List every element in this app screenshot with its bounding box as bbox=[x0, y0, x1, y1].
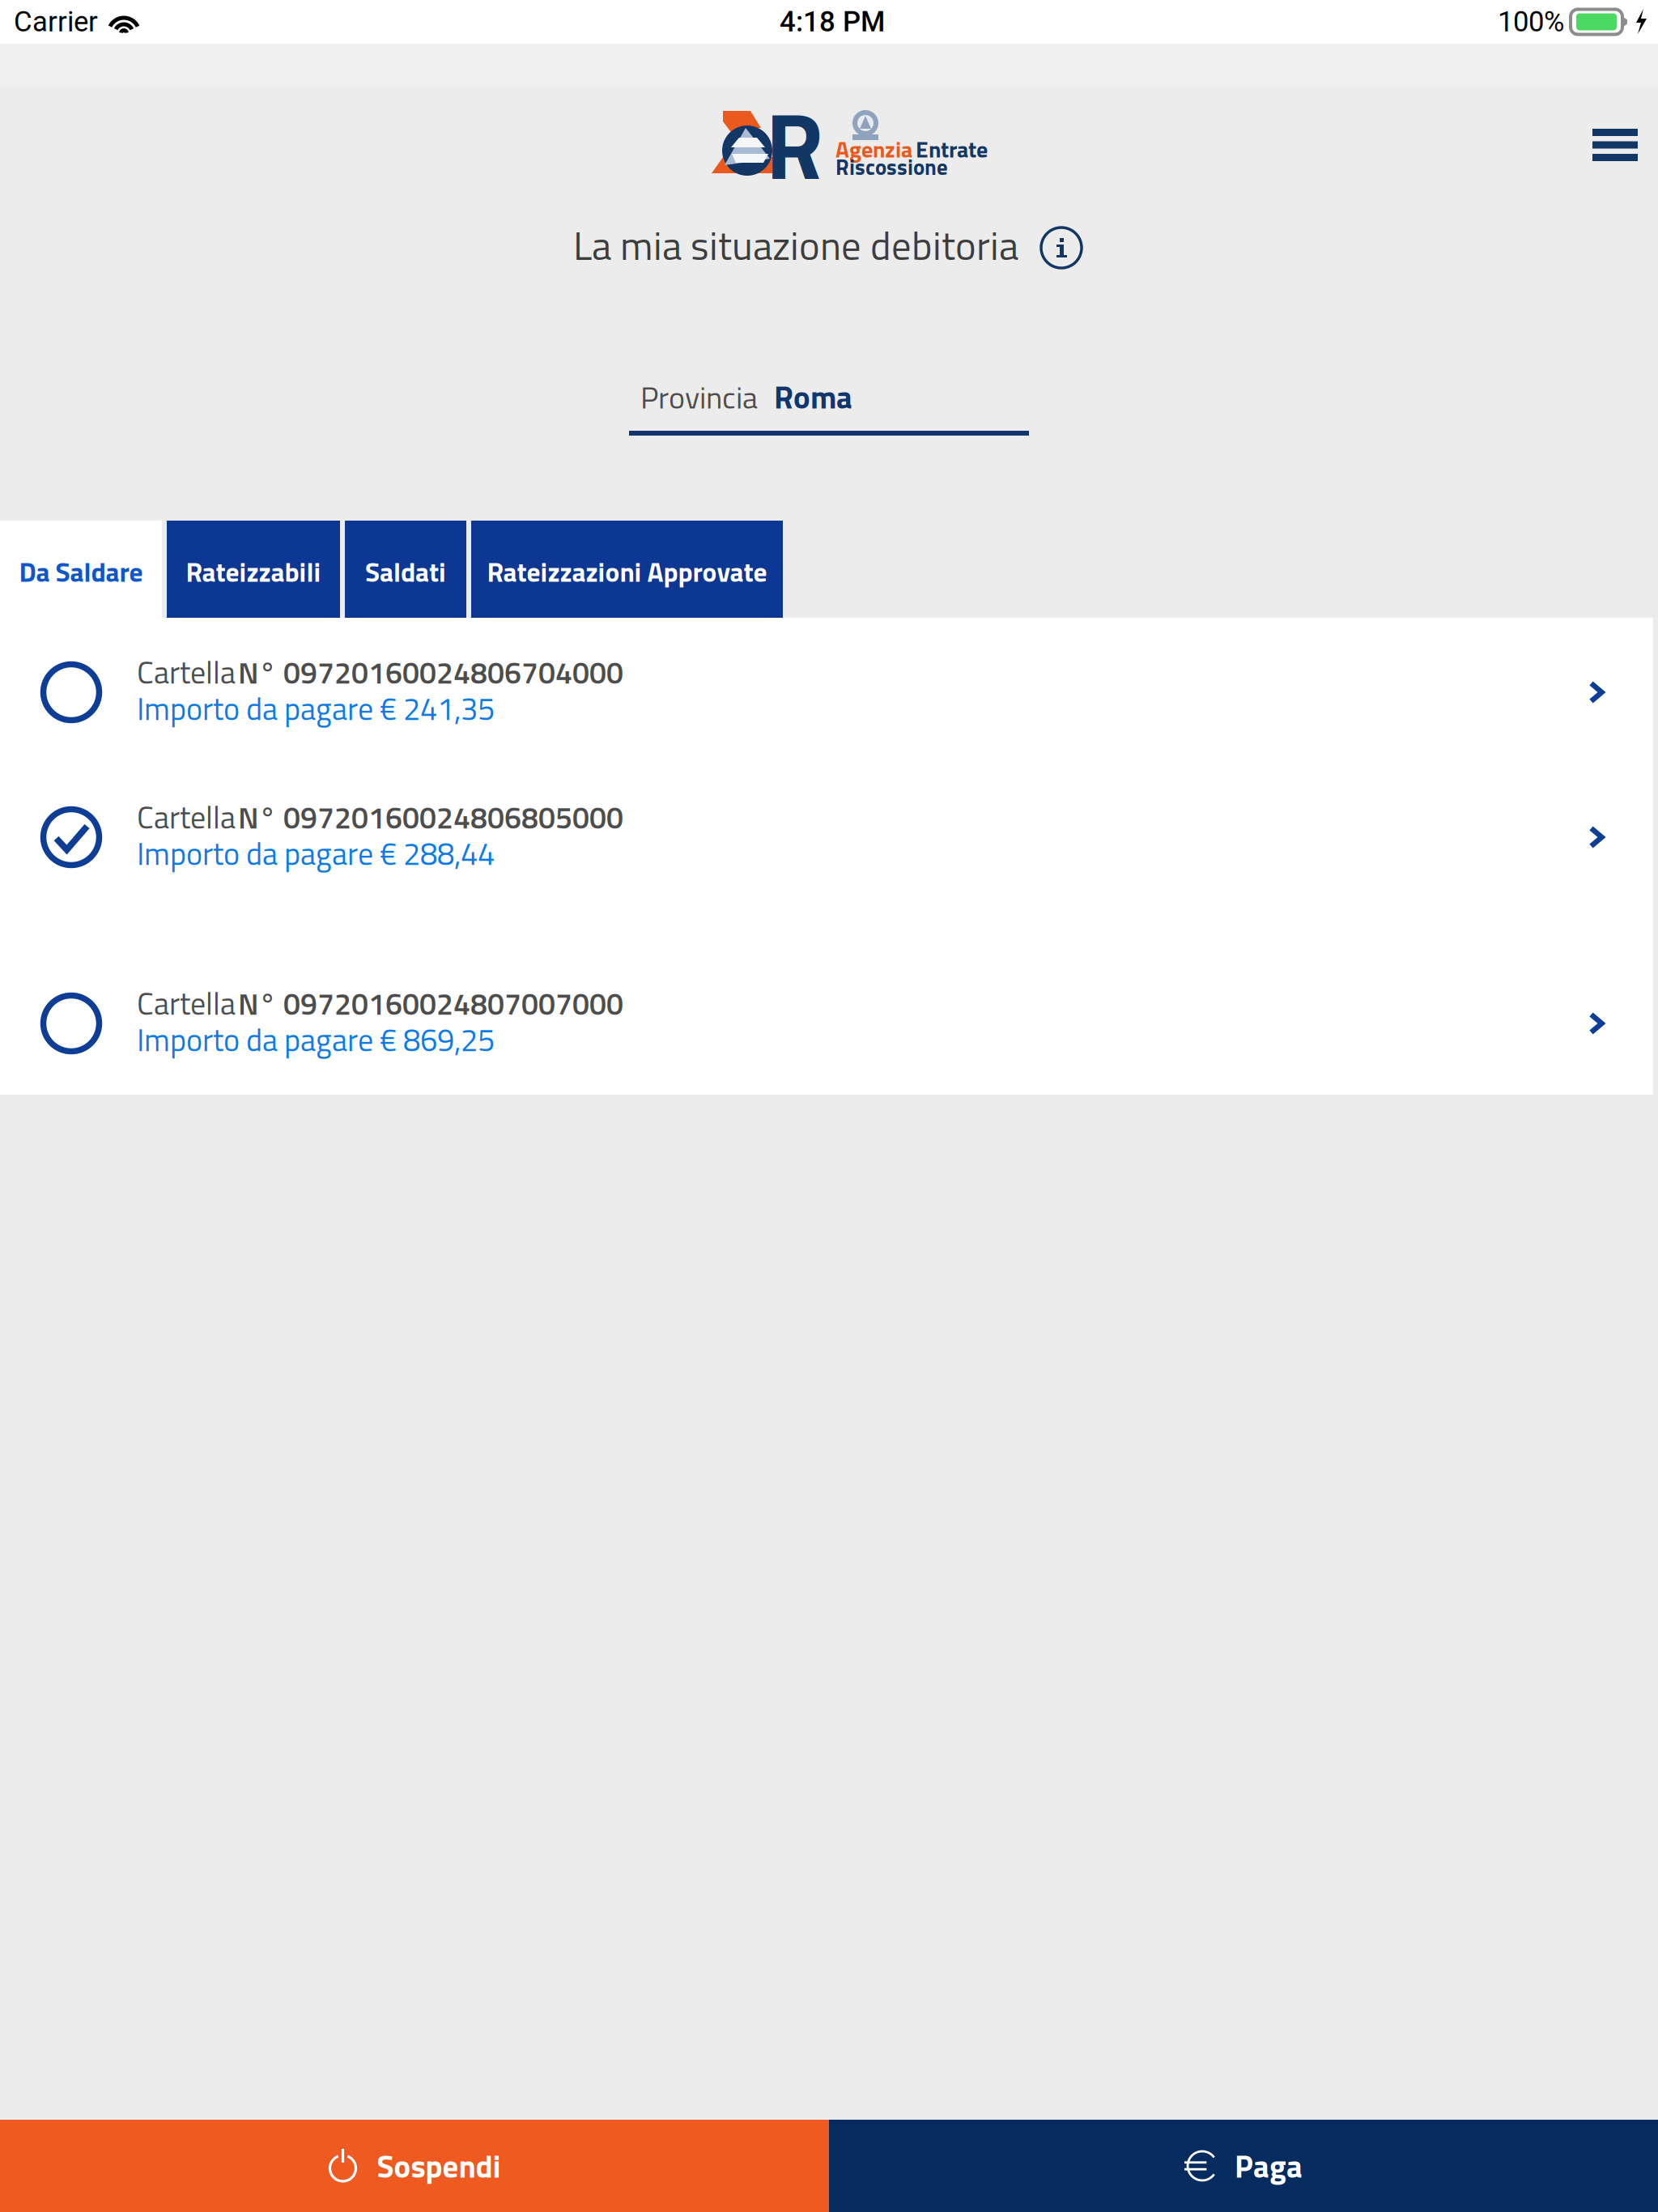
button[interactable]: Cartella bbox=[0, 793, 1653, 882]
staticText: Cartella bbox=[137, 980, 236, 1027]
staticText: Sospendi bbox=[377, 2142, 501, 2190]
staticText: Rateizzabili bbox=[186, 551, 321, 592]
staticText: Paga bbox=[1235, 2142, 1303, 2190]
button[interactable]: Cartella bbox=[0, 648, 1653, 737]
button[interactable]: Rateizzazioni Approvate bbox=[471, 521, 783, 618]
staticText: Cartella bbox=[137, 649, 236, 695]
staticText: Importo da pagare € 288,44 bbox=[137, 830, 495, 877]
button[interactable]: Rateizzabili bbox=[167, 521, 340, 618]
staticText: Da Saldare bbox=[19, 551, 143, 592]
staticText: N° bbox=[238, 649, 276, 695]
staticText: Rateizzazioni Approvate bbox=[487, 551, 767, 592]
staticText: Carrier bbox=[14, 5, 98, 38]
staticText: Riscossione bbox=[835, 150, 948, 183]
staticText: Saldati bbox=[365, 551, 446, 592]
staticText: 100% bbox=[1498, 5, 1564, 38]
staticText: Provincia bbox=[640, 374, 758, 420]
staticText: 09720160024807007000 bbox=[283, 980, 623, 1026]
staticText: Importo da pagare € 869,25 bbox=[137, 1016, 495, 1063]
staticText: 09720160024806704000 bbox=[283, 649, 623, 695]
button[interactable]: Paga bbox=[829, 2120, 1658, 2212]
staticText: Agenzia bbox=[835, 132, 912, 166]
button[interactable]: Saldati bbox=[345, 521, 466, 618]
staticText: N° bbox=[238, 794, 276, 840]
staticText: N° bbox=[238, 980, 276, 1026]
button[interactable]: Cartella bbox=[0, 979, 1653, 1068]
button[interactable]: Informazioni bbox=[1039, 226, 1083, 270]
staticText: R bbox=[764, 55, 836, 233]
button[interactable]: Sospendi bbox=[0, 2120, 829, 2212]
button[interactable]: Menu bbox=[1592, 129, 1638, 161]
button[interactable]: Provincia bbox=[635, 379, 1035, 436]
staticText: La mia situazione debitoria bbox=[573, 215, 1018, 275]
staticText: Importo da pagare € 241,35 bbox=[137, 685, 495, 732]
staticText: Roma bbox=[774, 373, 852, 421]
staticText: Entrate bbox=[916, 132, 988, 166]
staticText: Cartella bbox=[137, 794, 236, 840]
staticText: 4:18 PM bbox=[780, 5, 885, 38]
button[interactable]: Da Saldare bbox=[0, 521, 162, 618]
staticText: 09720160024806805000 bbox=[283, 794, 623, 840]
